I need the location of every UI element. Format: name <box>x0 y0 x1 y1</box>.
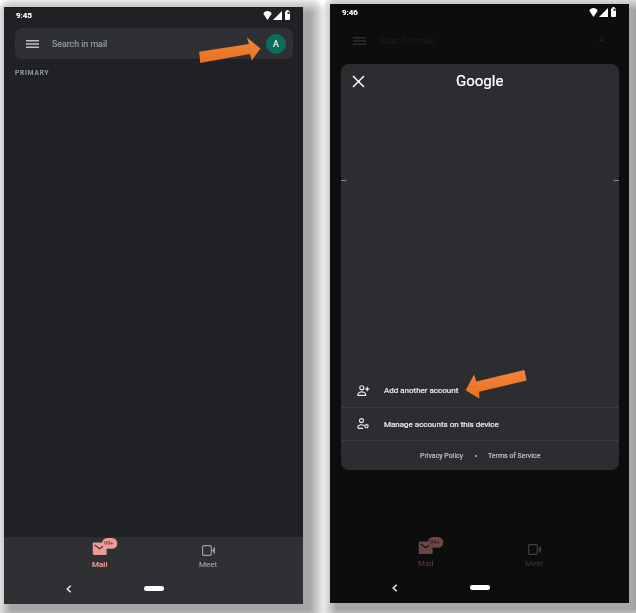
staticText: 99+ <box>430 539 440 546</box>
button[interactable]: Meet <box>480 536 588 568</box>
staticText: Search in mail <box>52 39 108 49</box>
staticText: 9:45 <box>16 11 32 20</box>
staticText: 99+ <box>104 540 114 547</box>
button[interactable]: Account <box>266 34 286 54</box>
staticText: Add another account <box>384 386 459 395</box>
staticText: Mail <box>92 560 108 569</box>
button[interactable]: Back <box>65 585 73 593</box>
button[interactable]: Terms of Service <box>488 452 541 460</box>
staticText: Google <box>456 72 504 90</box>
staticText: PRIMARY <box>15 69 50 77</box>
button[interactable]: 99+ <box>372 536 480 568</box>
staticText: Meet <box>199 560 218 569</box>
staticText: Manage accounts on this device <box>384 420 499 429</box>
button[interactable]: Manage accounts on this device <box>341 408 619 440</box>
button[interactable]: Add another account <box>341 374 619 407</box>
button[interactable]: Home <box>470 585 490 590</box>
button[interactable]: 99+ <box>46 537 154 569</box>
staticText: A <box>273 39 279 50</box>
button[interactable]: Home <box>144 586 164 591</box>
button[interactable]: Search in mail <box>15 28 293 59</box>
button[interactable]: Back <box>391 584 399 592</box>
staticText: Search in mail <box>379 36 435 46</box>
staticText: Meet <box>525 559 544 568</box>
button[interactable]: Close <box>353 76 364 87</box>
staticText: A <box>599 35 605 46</box>
staticText: 9:46 <box>342 8 358 17</box>
staticText: Mail <box>418 559 434 568</box>
button[interactable]: Meet <box>154 537 262 569</box>
button[interactable]: Privacy Policy <box>420 452 464 460</box>
